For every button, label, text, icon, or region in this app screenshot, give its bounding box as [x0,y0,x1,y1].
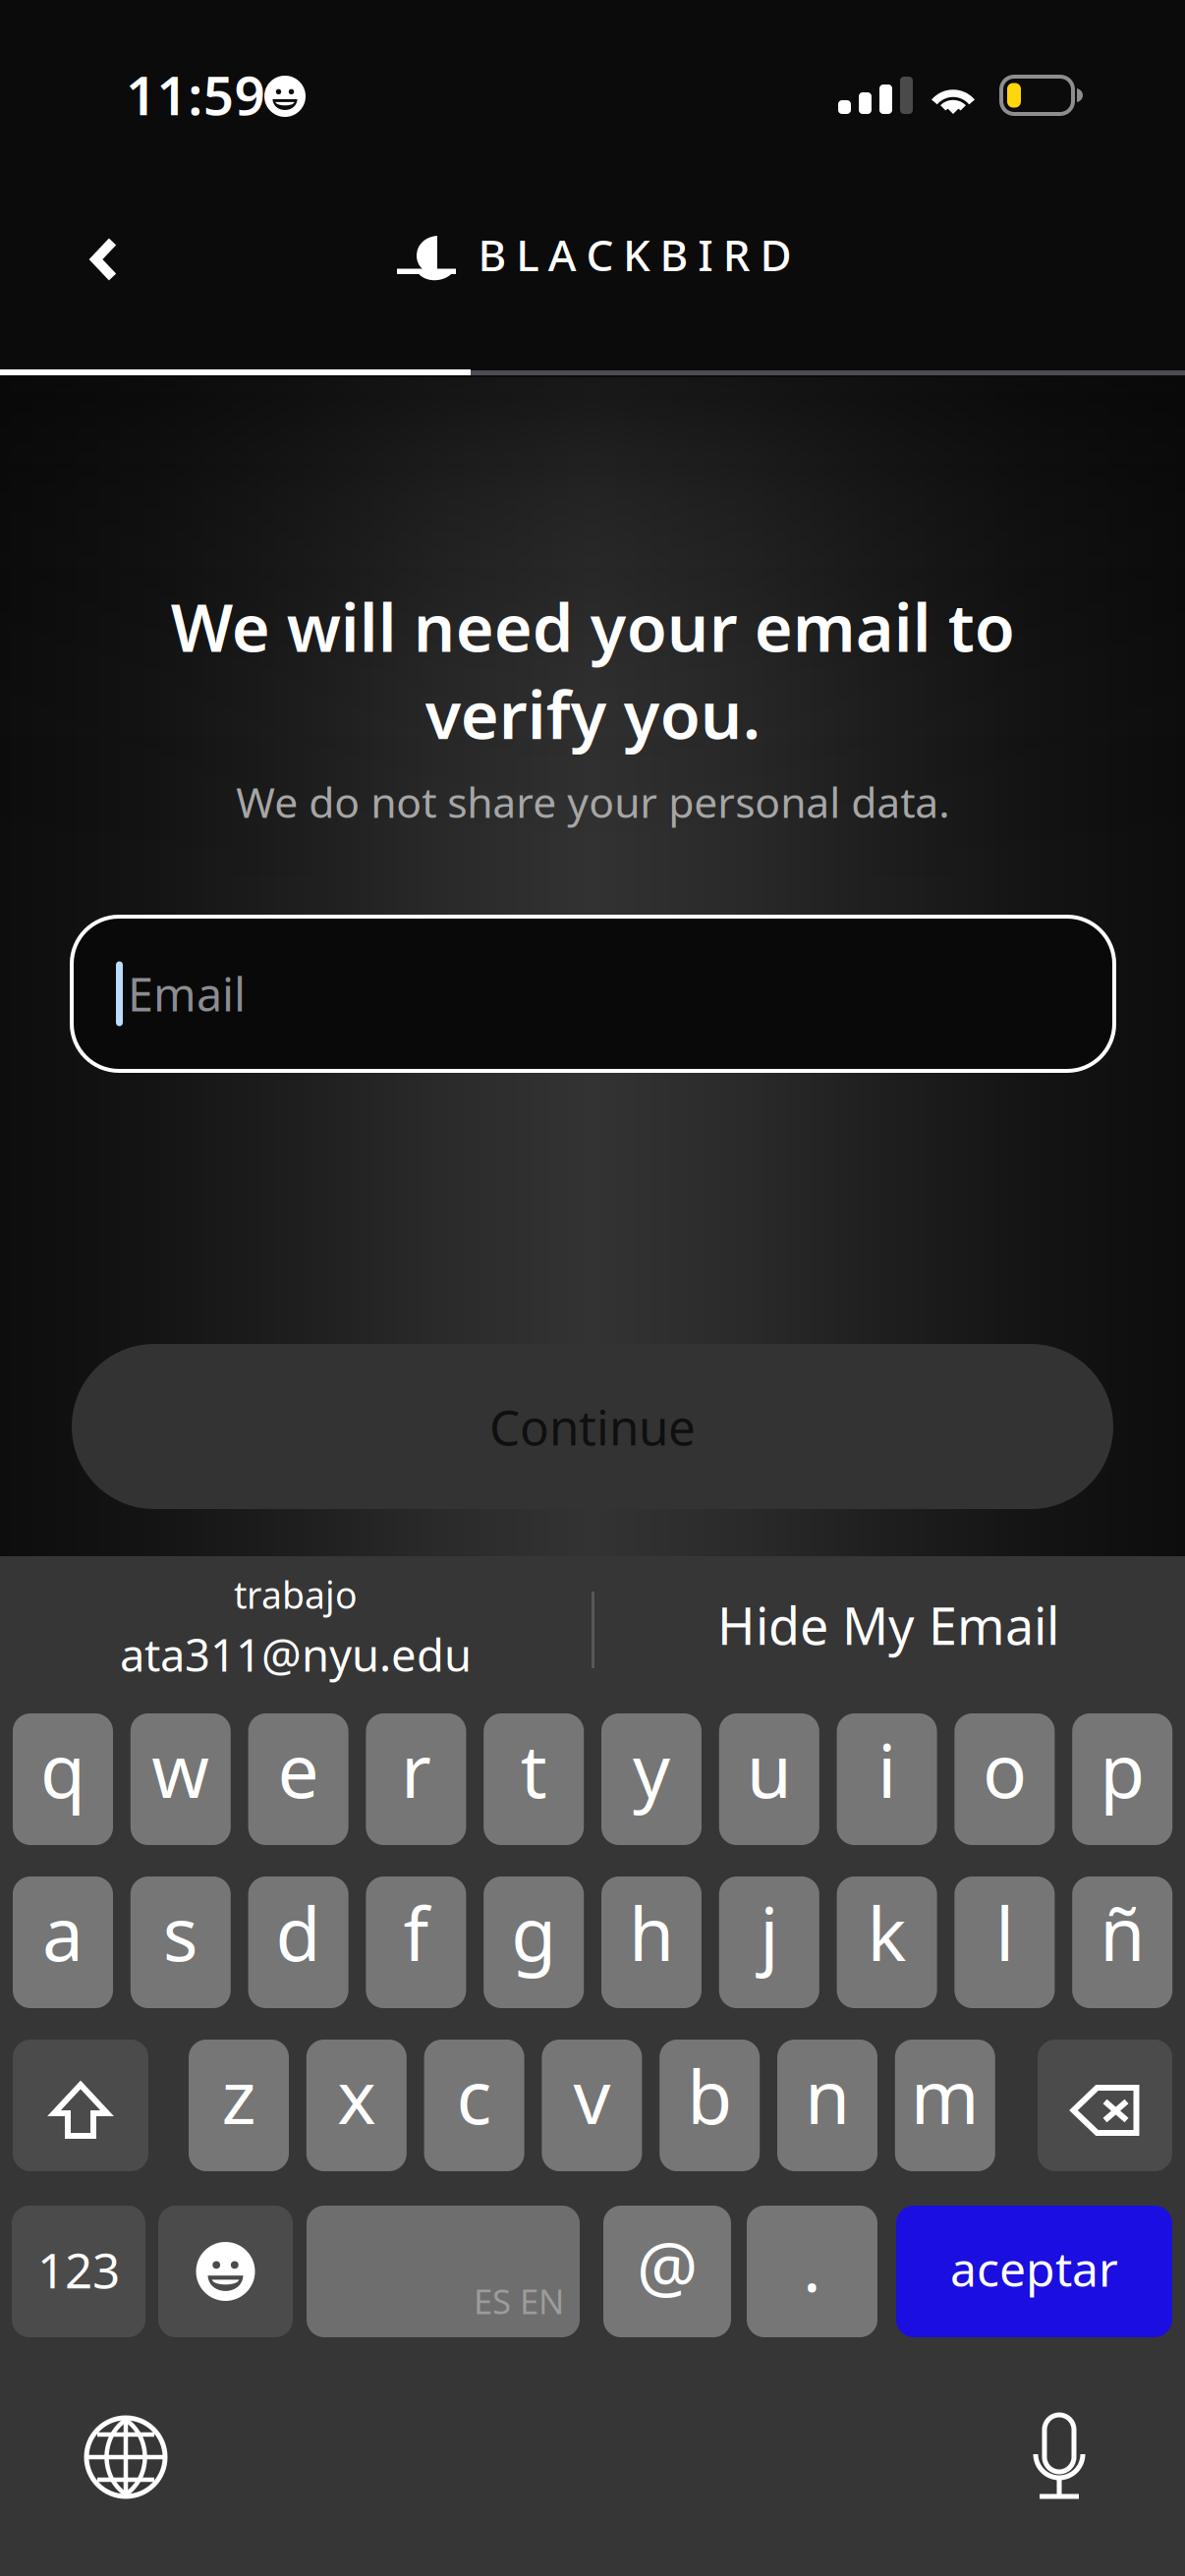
staticText: trabajo [234,1570,358,1619]
button[interactable]: aceptar [896,2206,1172,2337]
button[interactable]: h [601,1876,702,2008]
staticText: C [586,226,614,283]
button[interactable]: o [954,1713,1055,1845]
staticText: w [152,1721,210,1818]
button[interactable]: p [1072,1713,1172,1845]
button[interactable]: z [189,2040,289,2171]
button[interactable]: t [484,1713,584,1845]
button[interactable]: Back [61,215,147,304]
button[interactable]: f [366,1876,466,2008]
staticText: B [478,226,507,283]
staticText: y [633,1721,670,1818]
button[interactable]: u [719,1713,819,1845]
staticText: z [222,2047,256,2144]
staticText: n [805,2047,850,2144]
button[interactable]: Continue [72,1344,1113,1509]
staticText: p [1100,1721,1145,1818]
button[interactable]: . [747,2206,877,2337]
button[interactable]: Delete [1038,2040,1172,2171]
staticText: R [723,226,750,283]
button[interactable]: n [777,2040,877,2171]
button[interactable]: i [837,1713,937,1845]
staticText: s [163,1884,198,1981]
button[interactable]: w [130,1713,231,1845]
staticText: ES EN [474,2278,564,2324]
staticText: v [573,2047,611,2144]
staticText: B [660,226,688,283]
button[interactable]: g [484,1876,584,2008]
button[interactable]: e [248,1713,348,1845]
button[interactable]: Shift [13,2040,148,2171]
staticText: q [40,1721,85,1818]
staticText: L [516,226,539,283]
staticText: aceptar [950,2237,1118,2300]
button[interactable]: c [424,2040,524,2171]
button[interactable]: v [542,2040,642,2171]
staticText: K [623,226,650,283]
staticText: o [982,1721,1027,1818]
staticText: r [401,1721,431,1818]
staticText: ñ [1100,1884,1145,1981]
staticText: t [520,1721,547,1818]
button[interactable]: Change keyboard [59,2398,193,2516]
button[interactable]: 123 [12,2206,145,2337]
button[interactable]: j [719,1876,819,2008]
staticText: a [42,1884,84,1981]
button[interactable]: a [13,1876,113,2008]
staticText: 11:59 [126,59,265,130]
button[interactable]: x [306,2040,407,2171]
button[interactable]: Dictation [992,2398,1126,2516]
staticText: f [403,1884,429,1981]
button[interactable]: r [366,1713,466,1845]
staticText: . [803,2220,821,2311]
staticText: A [548,226,577,283]
button[interactable]: y [601,1713,702,1845]
staticText: e [278,1721,319,1818]
staticText: Continue [489,1394,696,1459]
button[interactable]: b [660,2040,760,2171]
button[interactable]: trabajo [11,1570,581,1684]
staticText: k [867,1884,907,1981]
staticText: 123 [37,2237,120,2302]
staticText: j [760,1884,779,1981]
staticText: x [337,2047,376,2144]
staticText: b [687,2047,732,2144]
staticText: Email [128,963,246,1024]
staticText: @ [637,2220,698,2311]
staticText: We do not share your personal data. [236,774,949,830]
staticText: I [698,226,714,283]
staticText: D [760,226,791,283]
button[interactable]: ñ [1072,1876,1172,2008]
button[interactable]: k [837,1876,937,2008]
staticText: u [747,1721,792,1818]
staticText: m [911,2047,979,2144]
button[interactable]: q [13,1713,113,1845]
staticText: d [276,1884,321,1981]
staticText: l [995,1884,1014,1981]
staticText: h [629,1884,674,1981]
staticText: i [878,1721,896,1818]
button[interactable]: d [248,1876,348,2008]
button[interactable]: s [130,1876,231,2008]
staticText: Hide My Email [717,1591,1059,1659]
staticText: ata311@nyu.edu [120,1625,472,1684]
button[interactable]: Space [307,2206,580,2337]
button[interactable]: Emoji [158,2206,293,2337]
staticText: g [511,1884,556,1981]
button[interactable]: @ [603,2206,731,2337]
button[interactable]: Hide My Email [603,1591,1173,1659]
staticText: c [457,2047,492,2144]
staticText: We will need your email to verify you. [170,583,1015,757]
button[interactable]: l [954,1876,1055,2008]
button[interactable]: m [895,2040,995,2171]
